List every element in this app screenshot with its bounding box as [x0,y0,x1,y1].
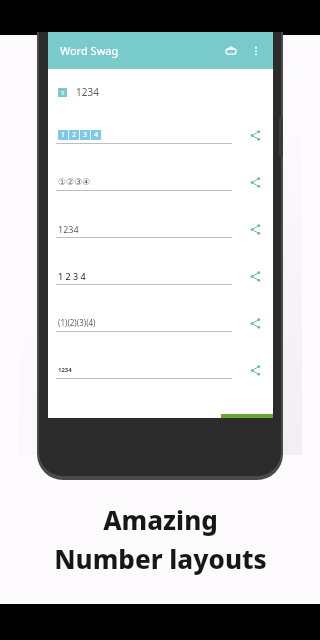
button[interactable]: Share [245,172,265,192]
staticText: 3 [83,130,88,140]
staticText: ①②③④ [58,177,91,187]
staticText: 1234 [76,85,99,99]
staticText: Word Swag [60,43,119,58]
staticText: 1234 [58,223,79,235]
staticText: 4 [94,130,99,140]
button[interactable]: 1 2 3 4 [48,256,273,303]
button[interactable]: Share [245,360,265,380]
staticText: Amazing [103,502,218,537]
staticText: 2 [72,130,77,140]
staticText: (1)(2)(3)(4) [58,317,96,328]
button[interactable]: ①②③④ [48,162,273,209]
staticText: Number layouts [54,541,267,576]
button[interactable]: 1234 [48,209,273,256]
button[interactable]: 1 [48,69,273,115]
button[interactable]: (1)(2)(3)(4) [48,303,273,350]
button[interactable]: More options [245,40,267,62]
button[interactable]: 1234 [48,350,273,397]
button[interactable]: Share [245,313,265,333]
staticText: 1 [61,89,65,97]
button[interactable]: 1 [48,115,273,162]
button[interactable]: Share [245,219,265,239]
button[interactable]: Inbox [221,41,241,61]
button[interactable]: Share [245,125,265,145]
staticText: 1234 [58,366,72,374]
button[interactable]: Share [245,266,265,286]
staticText: 1 [61,130,66,140]
staticText: 1 2 3 4 [58,270,86,282]
